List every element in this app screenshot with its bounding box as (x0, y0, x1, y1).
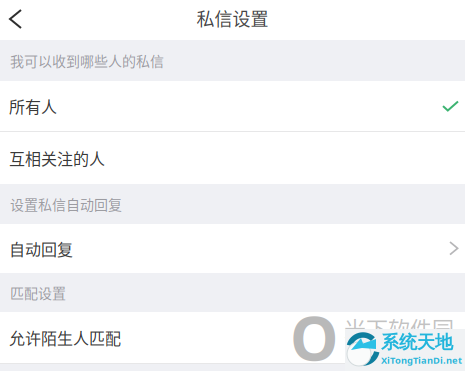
staticText: O (290, 295, 339, 371)
staticText: 自动回复 (9, 237, 73, 260)
staticText: 系统天地 (381, 331, 453, 354)
staticText: 所有人 (9, 94, 57, 118)
staticText: 匹配设置 (10, 282, 66, 303)
staticText: XiTongTianDi.net (381, 354, 462, 366)
staticText: 设置私信自动回复 (10, 194, 122, 214)
button[interactable]: 允许陌生人匹配 (0, 312, 465, 364)
button[interactable]: 互相关注的人 (0, 132, 465, 184)
staticText: 互相关注的人 (9, 146, 105, 170)
button[interactable]: 自动回复 (0, 224, 465, 273)
staticText: 私信设置 (196, 5, 268, 31)
staticText: 米下软件园 (344, 312, 454, 344)
button[interactable]: Back (0, 0, 36, 40)
staticText: 允许陌生人匹配 (9, 326, 121, 349)
staticText: 我可以收到哪些人的私信 (10, 50, 164, 71)
button[interactable]: 所有人 (0, 81, 465, 132)
